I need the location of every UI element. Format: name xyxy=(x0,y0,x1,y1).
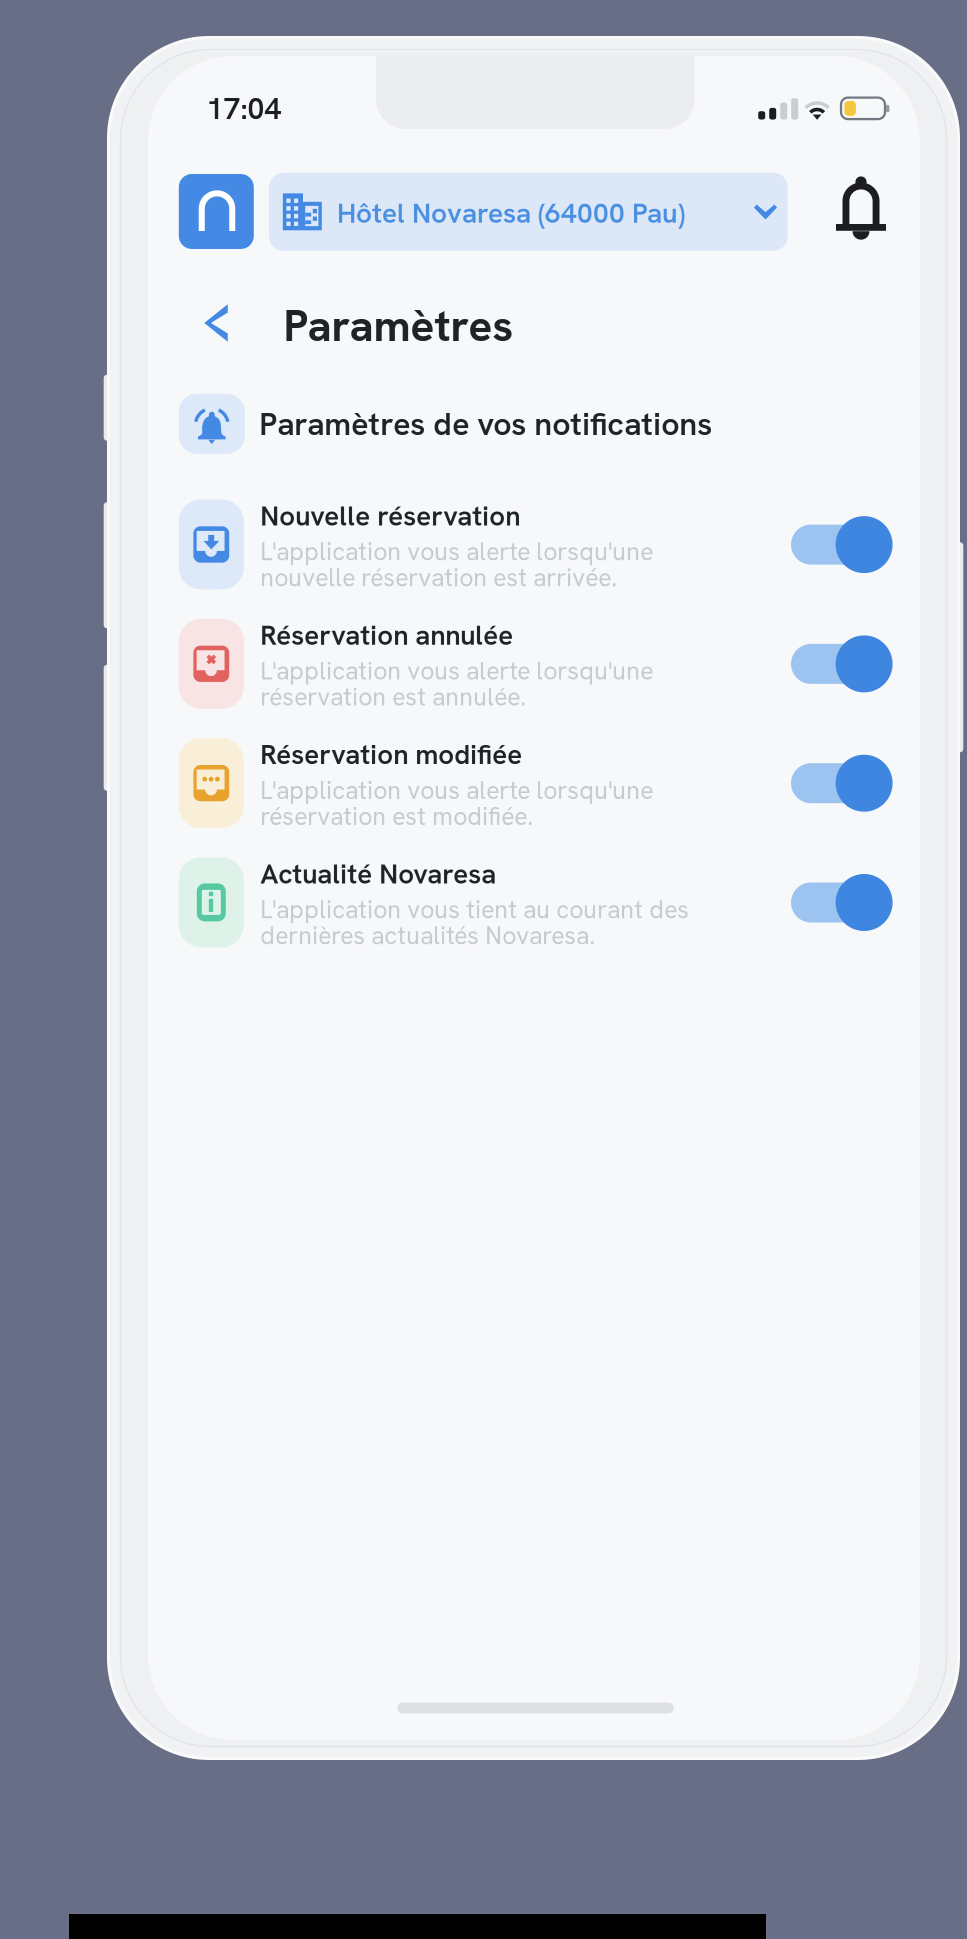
button[interactable]: Accueil Novaresa xyxy=(179,174,254,249)
staticText: nouvelle réservation est arrivée. xyxy=(260,561,617,594)
staticText: Nouvelle réservation xyxy=(260,498,520,534)
staticText: L'application vous tient au courant des xyxy=(260,893,689,926)
staticText: 17:04 xyxy=(206,89,281,128)
staticText: L'application vous alerte lorsqu'une xyxy=(260,774,653,806)
staticText: Réservation annulée xyxy=(260,617,513,653)
staticText: Actualité Novaresa xyxy=(260,856,496,892)
button[interactable]: Notifications xyxy=(824,170,898,254)
staticText: Paramètres de vos notifications xyxy=(259,403,712,445)
button[interactable]: Retour xyxy=(192,288,240,358)
button[interactable]: Activer la notification xyxy=(784,635,904,692)
staticText: L'application vous alerte lorsqu'une xyxy=(260,535,653,568)
staticText: réservation est annulée. xyxy=(260,681,526,713)
button[interactable]: Activer la notification xyxy=(784,516,904,573)
staticText: Hôtel Novaresa (64000 Pau) xyxy=(337,195,685,231)
staticText: Réservation modifiée xyxy=(260,736,522,772)
staticText: dernières actualités Novaresa. xyxy=(260,919,595,952)
button[interactable]: Activer la notification xyxy=(784,874,904,931)
button[interactable]: Hôtel Novaresa (64000 Pau) xyxy=(269,173,788,251)
staticText: réservation est modifiée. xyxy=(260,800,533,832)
staticText: L'application vous alerte lorsqu'une xyxy=(260,655,653,687)
button[interactable]: Activer la notification xyxy=(784,755,904,812)
staticText: Paramètres xyxy=(283,297,513,354)
